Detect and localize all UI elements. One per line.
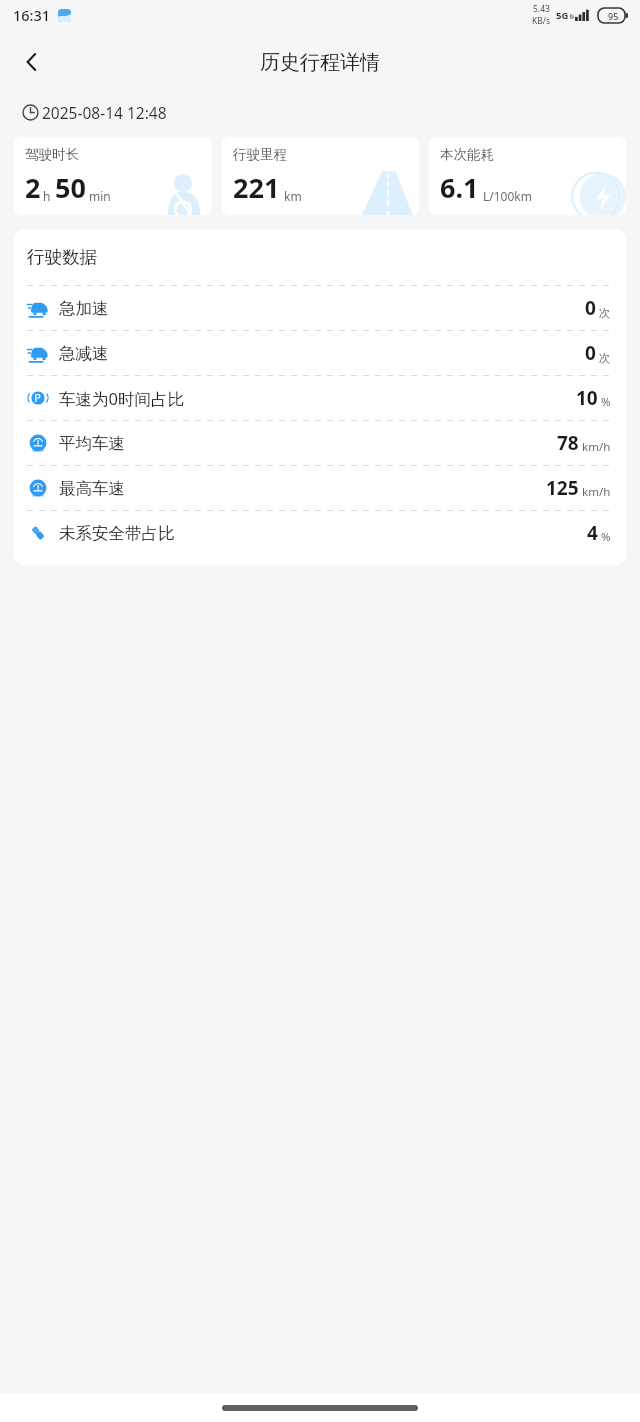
staticText: h bbox=[43, 188, 51, 204]
staticText: 4 bbox=[587, 520, 598, 546]
staticText: 行驶里程 bbox=[233, 146, 287, 163]
staticText: 78 bbox=[557, 430, 579, 456]
staticText: 未系安全带占比 bbox=[59, 523, 175, 544]
staticText: 10 bbox=[576, 385, 598, 411]
button[interactable]: 车速为0时间占比 bbox=[14, 376, 626, 420]
staticText: 本次能耗 bbox=[440, 146, 494, 163]
button[interactable]: 驾驶时长 bbox=[14, 137, 212, 215]
staticText: 2025-08-14 12:48 bbox=[42, 102, 167, 123]
button[interactable]: 未系安全带占比 bbox=[14, 511, 626, 555]
staticText: 50 bbox=[55, 169, 86, 206]
button[interactable]: Back bbox=[10, 40, 54, 84]
staticText: 平均车速 bbox=[59, 433, 125, 454]
button[interactable]: 平均车速 bbox=[14, 421, 626, 465]
staticText: 5G bbox=[556, 9, 569, 22]
staticText: 0 bbox=[585, 295, 596, 321]
staticText: 0 bbox=[585, 340, 596, 366]
staticText: 驾驶时长 bbox=[25, 146, 79, 163]
button[interactable]: 行驶里程 bbox=[222, 137, 419, 215]
staticText: 95 bbox=[608, 10, 619, 22]
staticText: 最高车速 bbox=[59, 478, 125, 499]
staticText: 车速为0时间占比 bbox=[59, 387, 184, 410]
staticText: 125 bbox=[546, 475, 579, 501]
staticText: 16:31 bbox=[13, 5, 51, 25]
staticText: 5.43 bbox=[533, 3, 550, 15]
staticText: km/h bbox=[582, 439, 611, 455]
button[interactable]: 急加速 bbox=[14, 286, 626, 330]
staticText: km/h bbox=[582, 484, 611, 500]
staticText: km bbox=[284, 188, 302, 204]
staticText: 次 bbox=[599, 306, 611, 320]
staticText: KB/s bbox=[532, 15, 551, 27]
staticText: 2 bbox=[25, 169, 41, 206]
button[interactable]: 最高车速 bbox=[14, 466, 626, 510]
staticText: 急加速 bbox=[59, 298, 109, 319]
staticText: 急减速 bbox=[59, 343, 109, 364]
staticText: 次 bbox=[599, 351, 611, 365]
staticText: min bbox=[89, 188, 111, 204]
staticText: L/100km bbox=[483, 188, 532, 204]
button[interactable]: 急减速 bbox=[14, 331, 626, 375]
staticText: 6.1 bbox=[440, 169, 479, 206]
staticText: % bbox=[601, 394, 611, 410]
staticText: 221 bbox=[233, 169, 280, 206]
button[interactable]: 本次能耗 bbox=[429, 137, 626, 215]
staticText: 历史行程详情 bbox=[260, 50, 380, 75]
staticText: 行驶数据 bbox=[27, 246, 97, 268]
staticText: % bbox=[601, 529, 611, 545]
